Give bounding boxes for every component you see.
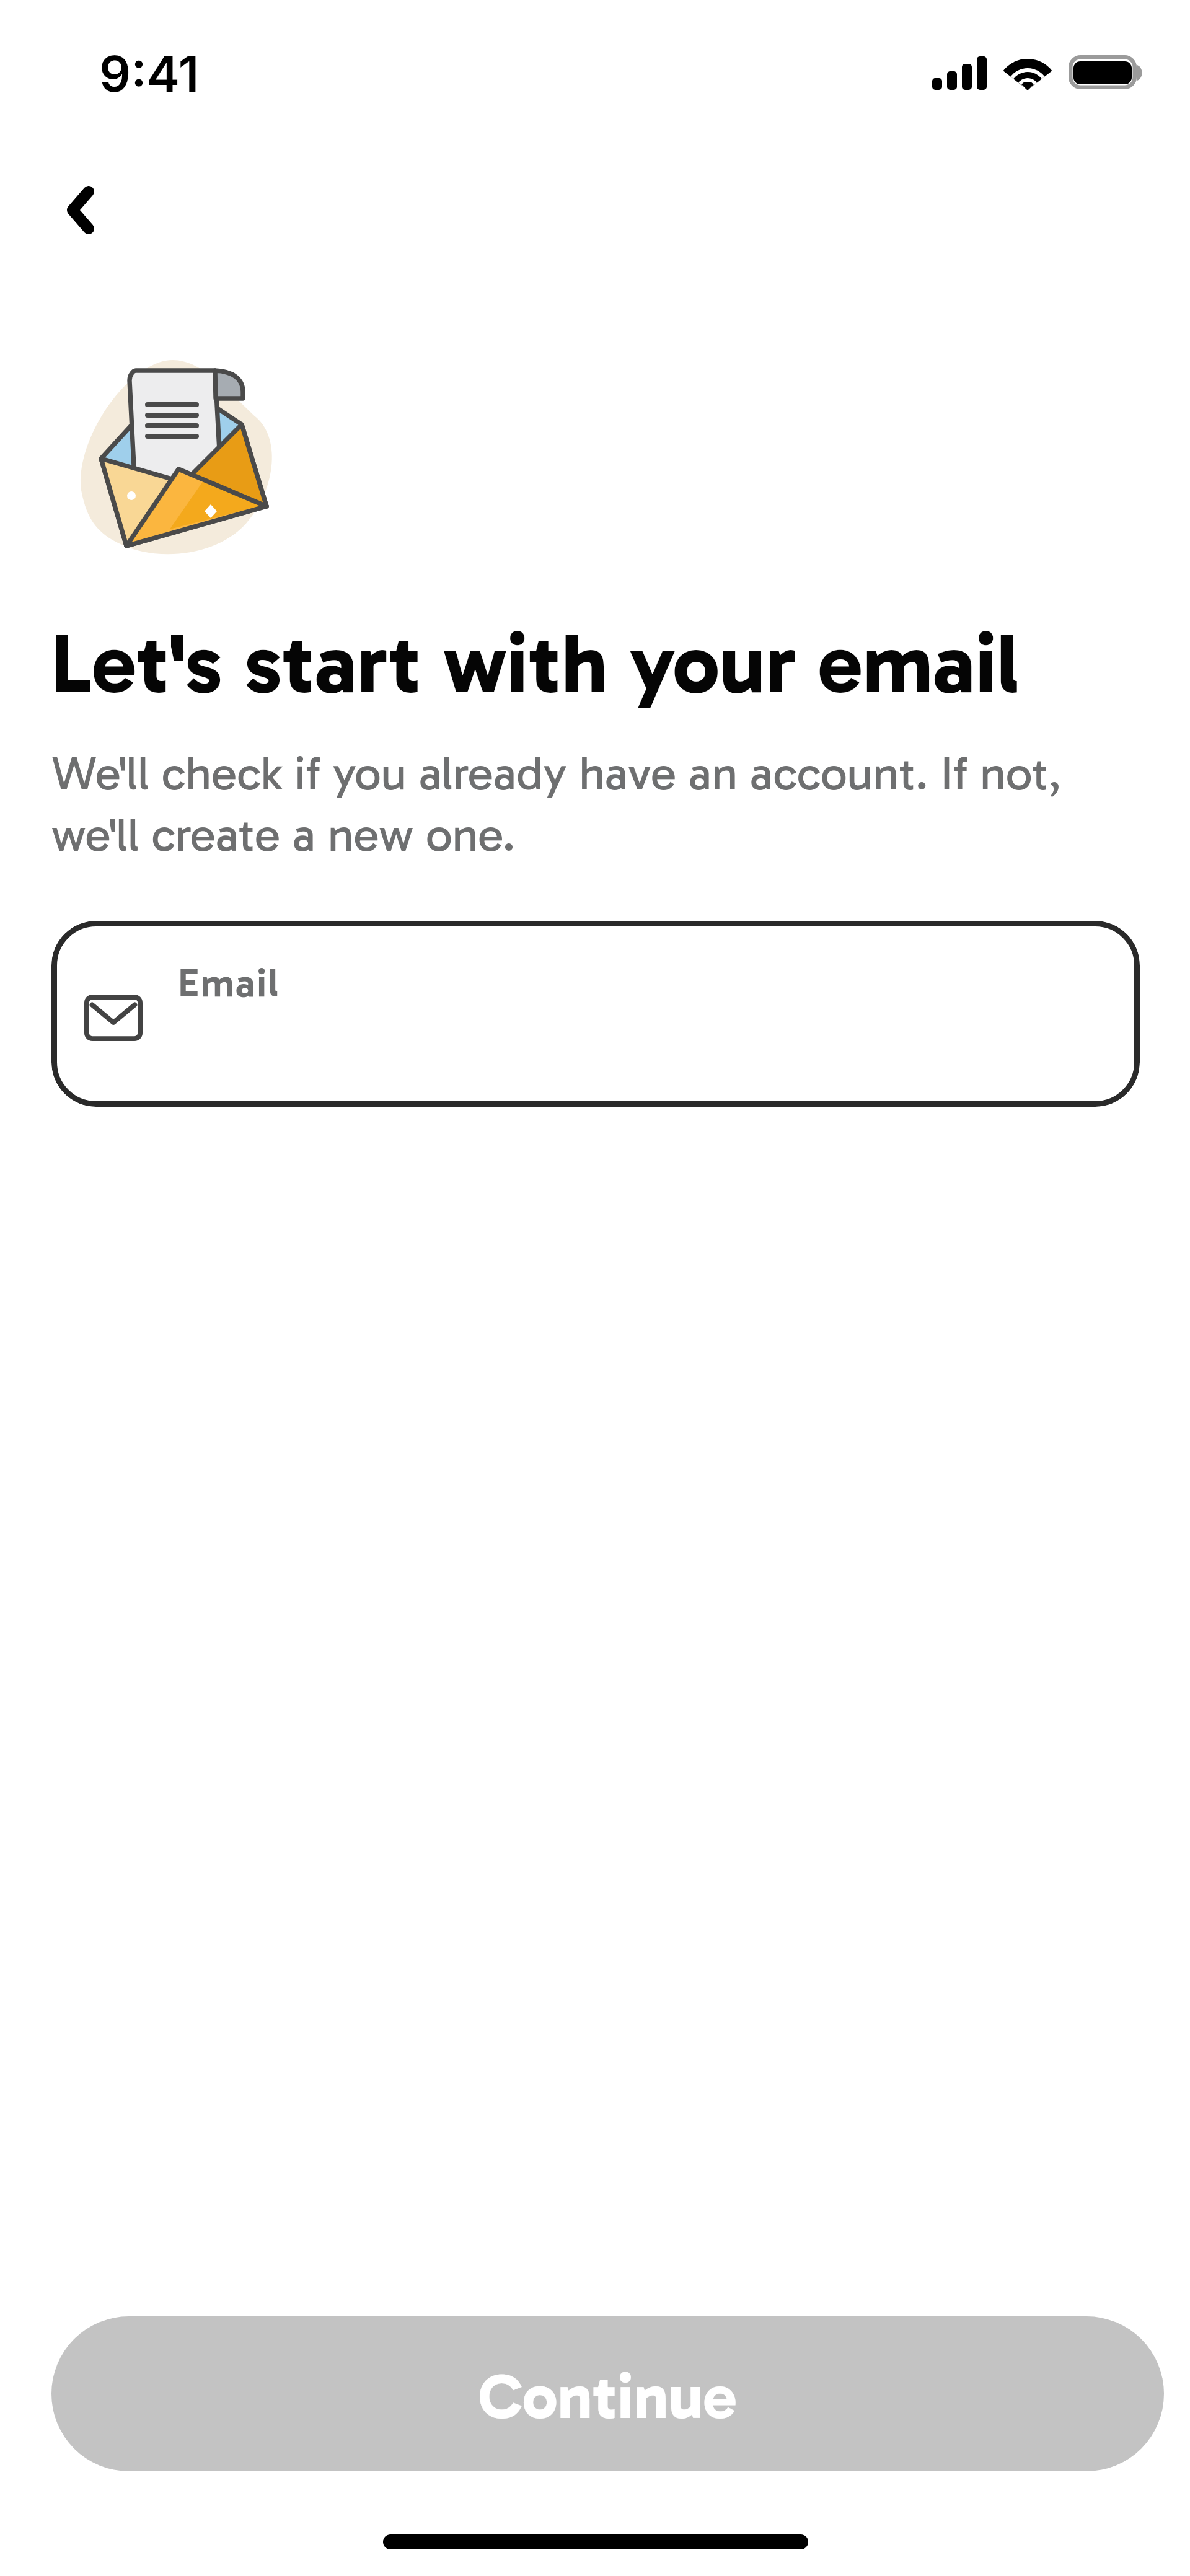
button[interactable]: Email: [51, 921, 1140, 1107]
staticText: Email: [178, 959, 280, 1007]
button[interactable]: Continue: [51, 2316, 1164, 2471]
staticText: Let's start with your email: [51, 613, 1154, 714]
staticText: We'll check if you already have an accou…: [51, 745, 1086, 863]
staticText: Continue: [478, 2358, 737, 2434]
button[interactable]: Back: [31, 160, 130, 260]
staticText: 9:41: [99, 43, 200, 103]
